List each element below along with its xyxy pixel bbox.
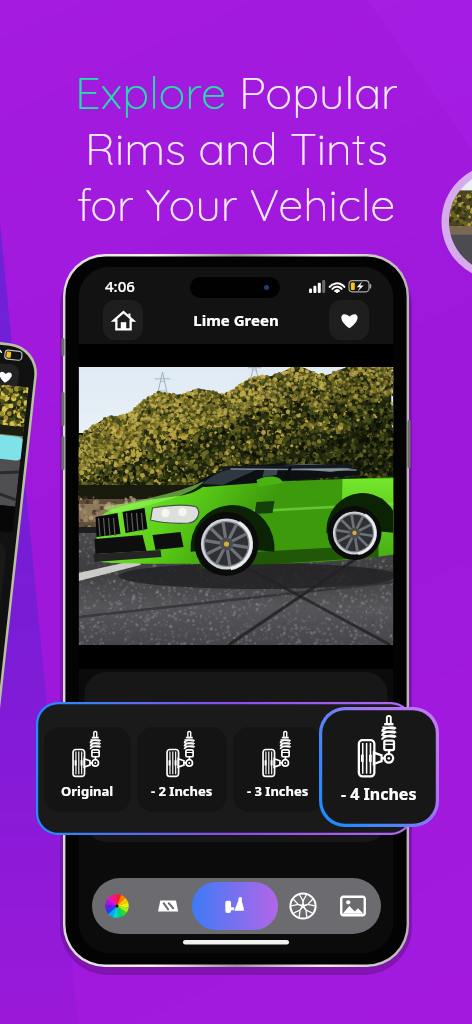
button[interactable]: - 4 Inches	[319, 707, 439, 827]
staticText: - 4 Inches	[341, 783, 417, 805]
staticText: Lime Green	[0, 310, 472, 330]
staticText: for Your Vehicle	[77, 176, 396, 232]
staticText: Explore	[75, 64, 239, 120]
button[interactable]: Gallery	[328, 878, 378, 934]
button[interactable]: - 3 Inches	[233, 727, 323, 812]
button[interactable]: - 2 Inches	[137, 727, 227, 812]
staticText: 4:06	[105, 276, 135, 296]
staticText: - 3 Inches	[247, 782, 309, 800]
button[interactable]: Suspension	[192, 882, 278, 930]
button[interactable]: Favourite	[329, 300, 369, 340]
button[interactable]: Original	[44, 727, 131, 812]
button[interactable]: Home	[103, 300, 143, 340]
button[interactable]: Colour	[92, 878, 142, 934]
button[interactable]: Rims	[278, 878, 328, 934]
staticText: Rims and Tints	[85, 120, 388, 176]
staticText: Original	[61, 782, 114, 800]
staticText: Popular	[239, 64, 398, 120]
staticText: - 2 Inches	[151, 782, 213, 800]
button[interactable]: Tint	[142, 878, 192, 934]
